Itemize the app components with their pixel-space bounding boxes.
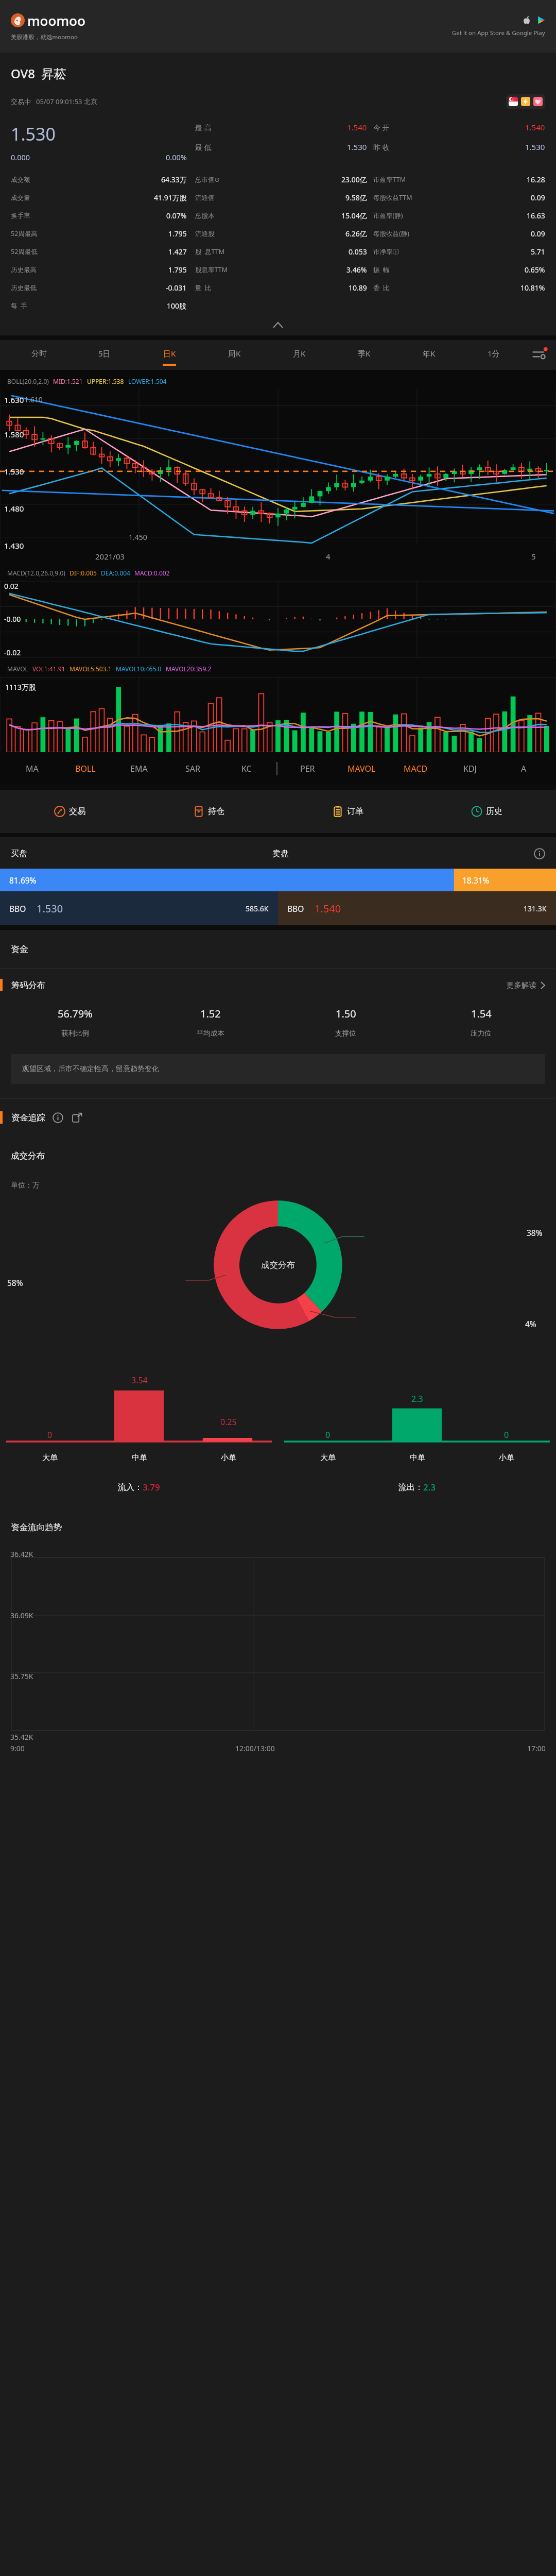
button[interactable]: 周K xyxy=(202,340,267,370)
button[interactable]: MAVOL xyxy=(335,752,389,785)
staticText: 1.530 xyxy=(525,142,545,152)
staticText: 资金追踪 xyxy=(11,1112,45,1123)
staticText: 支撑位 xyxy=(335,1029,356,1038)
button[interactable]: 年K xyxy=(396,340,461,370)
staticText: MID:1.521 xyxy=(53,377,83,385)
staticText: 日K xyxy=(163,348,176,359)
staticText: 2.3 xyxy=(411,1393,423,1404)
staticText: -0.00 xyxy=(4,614,21,624)
button[interactable]: Collapse quote details xyxy=(0,315,556,335)
staticText: KDJ xyxy=(463,763,477,774)
button[interactable]: 交易 xyxy=(0,790,139,833)
staticText: 季K xyxy=(358,348,371,359)
staticText: 资金 xyxy=(11,944,28,955)
button[interactable]: BBO xyxy=(278,891,556,925)
staticText: 年K xyxy=(423,348,436,359)
button[interactable]: Google Play xyxy=(537,16,545,24)
staticText: 获利比例 xyxy=(61,1029,89,1038)
button[interactable]: 分时 xyxy=(6,340,72,370)
staticText: 1.630 xyxy=(4,395,24,405)
staticText: MACD:0.002 xyxy=(134,569,170,577)
button[interactable]: Order book info xyxy=(534,848,545,859)
button[interactable]: Singapore market xyxy=(509,97,518,106)
staticText: 总市值⊙ xyxy=(195,176,220,184)
button[interactable]: 更多解读 xyxy=(507,980,545,990)
staticText: PER xyxy=(300,763,315,774)
staticText: 1.540 xyxy=(525,122,545,132)
staticText: 筹码分布 xyxy=(11,980,45,991)
staticText: DEA:0.004 xyxy=(101,569,130,577)
button[interactable]: MA xyxy=(5,752,59,785)
button[interactable]: 季K xyxy=(332,340,396,370)
staticText: 35.75K xyxy=(10,1671,33,1681)
button[interactable]: moomoo xyxy=(0,0,556,53)
staticText: A xyxy=(521,763,527,774)
button[interactable]: Chart settings xyxy=(526,340,553,370)
staticText: MAVOL10:465.0 xyxy=(116,665,162,673)
button[interactable]: KDJ xyxy=(443,752,497,785)
button[interactable]: 1分 xyxy=(461,340,526,370)
button[interactable]: KC xyxy=(219,752,273,785)
staticText: 成交分布 xyxy=(261,1260,295,1270)
button[interactable]: 历史 xyxy=(417,790,556,833)
staticText: moomoo xyxy=(27,11,85,29)
staticText: 1.480 xyxy=(4,503,24,514)
staticText: 15.04亿 xyxy=(341,211,367,221)
button[interactable]: 月K xyxy=(267,340,332,370)
button[interactable]: 持仓 xyxy=(139,790,278,833)
staticText: KC xyxy=(241,763,252,774)
staticText: 每 手 xyxy=(11,301,27,310)
staticText: 分时 xyxy=(31,349,47,359)
staticText: 131.3K xyxy=(524,904,547,913)
staticText: 1.580 xyxy=(4,429,24,439)
button[interactable]: BBO xyxy=(0,891,278,925)
staticText: 1.530 xyxy=(347,142,367,152)
staticText: 流出： xyxy=(398,1482,423,1493)
button[interactable]: 日K xyxy=(137,340,202,370)
staticText: 最 低 xyxy=(195,142,212,152)
staticText: 2021/03 xyxy=(95,551,125,562)
staticText: 1.530 xyxy=(4,466,24,477)
button[interactable]: A xyxy=(497,752,551,785)
staticText: LOWER:1.504 xyxy=(128,377,167,385)
staticText: 1.54 xyxy=(471,1007,492,1021)
staticText: 成交分布 xyxy=(11,1150,45,1161)
staticText: 16.63 xyxy=(527,211,545,221)
staticText: 量 比 xyxy=(195,283,212,292)
staticText: 36.42K xyxy=(10,1549,33,1559)
staticText: 52周最高 xyxy=(11,229,38,238)
button[interactable]: 81.69% xyxy=(0,869,454,891)
staticText: 总股本 xyxy=(195,212,215,220)
staticText: 100股 xyxy=(167,301,187,311)
staticText: -0.02 xyxy=(4,648,21,657)
button[interactable]: Fund tracking info xyxy=(53,1112,63,1123)
staticText: 1.427 xyxy=(168,247,187,257)
button[interactable]: Share xyxy=(72,1112,82,1123)
button[interactable]: Level 1 quote xyxy=(521,97,530,106)
staticText: 3.54 xyxy=(131,1375,148,1386)
staticText: BOLL xyxy=(75,763,96,774)
staticText: 0 xyxy=(47,1429,53,1440)
staticText: 卖盘 xyxy=(272,849,289,859)
staticText: 41.91万股 xyxy=(154,193,187,202)
staticText: 流通值 xyxy=(195,194,215,202)
button[interactable]: Add to watchlist xyxy=(533,97,543,106)
staticText: 12:00/13:00 xyxy=(235,1743,275,1753)
staticText: 股息率TTM xyxy=(195,265,228,274)
staticText: 委 比 xyxy=(373,283,390,292)
button[interactable]: BOLL xyxy=(59,752,112,785)
button[interactable]: 订单 xyxy=(278,790,417,833)
staticText: 36.09K xyxy=(10,1611,33,1620)
staticText: 585.6K xyxy=(246,904,269,913)
button[interactable]: 5日 xyxy=(72,340,137,370)
button[interactable]: SAR xyxy=(166,752,219,785)
button[interactable]: 18.31% xyxy=(454,869,556,891)
staticText: 3.79 xyxy=(143,1481,160,1493)
staticText: BBO xyxy=(287,903,304,914)
button[interactable]: App Store xyxy=(523,16,531,24)
staticText: 4% xyxy=(525,1318,536,1329)
button[interactable]: MACD xyxy=(389,752,443,785)
button[interactable]: PER xyxy=(281,752,335,785)
staticText: MAVOL xyxy=(347,763,376,774)
button[interactable]: EMA xyxy=(112,752,166,785)
